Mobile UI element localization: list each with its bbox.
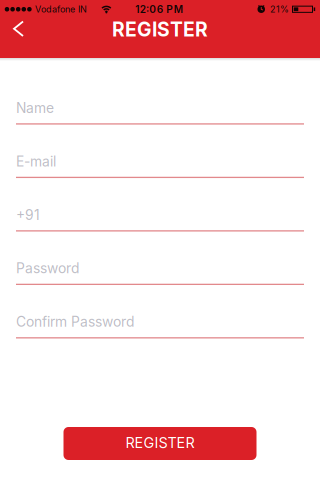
textField[interactable]: Password — [16, 260, 304, 285]
staticText: E-mail — [16, 153, 56, 170]
staticText: REGISTER — [112, 18, 208, 41]
staticText: +91 — [16, 206, 40, 223]
staticText: Confirm Password — [16, 313, 134, 330]
staticText: 21% — [270, 4, 289, 15]
staticText: Vodafone IN — [35, 4, 87, 15]
staticText: 12:06 PM — [135, 3, 183, 15]
textField[interactable]: Name — [16, 99, 304, 125]
staticText: Password — [16, 260, 79, 277]
textField[interactable]: Confirm Password — [16, 313, 304, 338]
button[interactable]: REGISTER — [63, 427, 256, 460]
textField[interactable]: +91 — [16, 206, 304, 232]
staticText: REGISTER — [125, 434, 194, 451]
button[interactable]: Back — [0, 0, 35, 46]
textField[interactable]: E-mail — [16, 153, 304, 178]
staticText: Name — [16, 99, 54, 116]
